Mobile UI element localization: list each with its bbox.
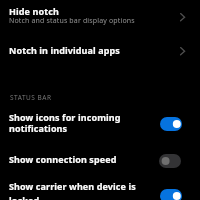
staticText: Notch in individual apps: [9, 44, 120, 56]
button[interactable]: [0, 0, 200, 36]
staticText: Show carrier when device is locked: [9, 180, 136, 200]
staticText: STATUS BAR: [10, 93, 52, 102]
staticText: Show connection speed: [9, 153, 117, 165]
staticText: Show icons for incoming notifications: [9, 111, 121, 135]
button[interactable]: [0, 146, 200, 174]
staticText: Notch and status bar display options: [9, 16, 135, 26]
button[interactable]: [0, 40, 200, 66]
button[interactable]: [0, 106, 200, 138]
button[interactable]: [0, 178, 200, 200]
staticText: Hide notch: [9, 5, 59, 17]
